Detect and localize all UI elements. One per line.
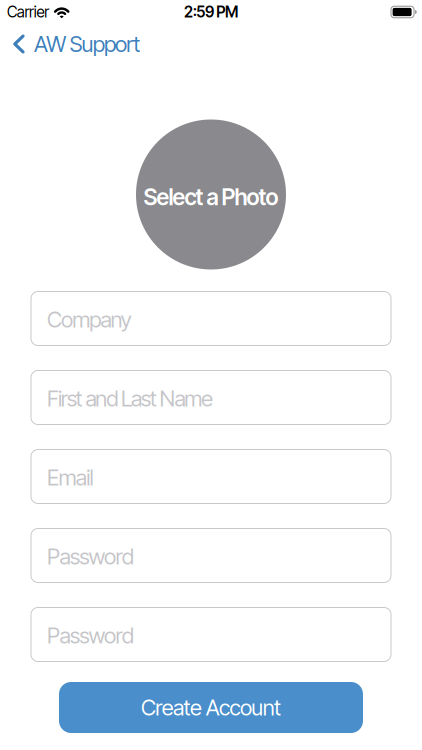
button[interactable]: Back [0, 31, 140, 57]
button[interactable]: Select a Photo [136, 119, 286, 269]
staticText: Password [47, 622, 134, 649]
staticText: Carrier [7, 3, 49, 21]
button[interactable]: Company [31, 291, 391, 345]
staticText: Company [47, 306, 132, 333]
button[interactable]: Password [31, 528, 391, 582]
staticText: AW Support [34, 31, 140, 57]
button[interactable]: Create Account [59, 682, 363, 733]
button[interactable]: Email [31, 449, 391, 503]
button[interactable]: First and Last Name [31, 370, 391, 424]
button[interactable]: Password [31, 607, 391, 661]
staticText: 2:59 PM [184, 3, 238, 21]
staticText: First and Last Name [47, 385, 213, 412]
staticText: Email [47, 464, 94, 491]
staticText: Password [47, 543, 134, 570]
staticText: Create Account [141, 694, 281, 721]
staticText: Select a Photo [143, 183, 278, 211]
